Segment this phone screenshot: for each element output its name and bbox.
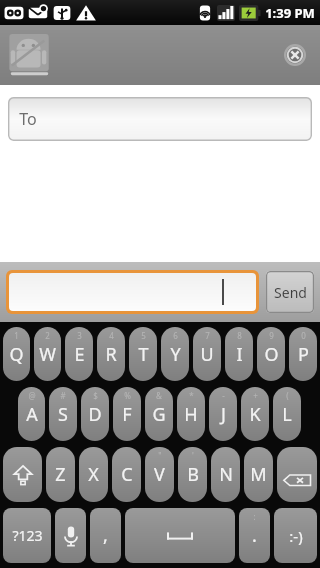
staticText: P: [298, 342, 309, 367]
staticText: +: [253, 390, 258, 401]
button[interactable]: Send: [266, 271, 314, 313]
button[interactable]: 5: [129, 327, 157, 381]
button[interactable]: X: [79, 447, 108, 502]
staticText: ,: [103, 523, 108, 548]
button[interactable]: M: [244, 447, 273, 502]
staticText: 4: [109, 330, 114, 341]
staticText: X: [88, 462, 99, 487]
staticText: B: [187, 462, 199, 487]
staticText: 7: [205, 330, 210, 341]
button[interactable]: Shift: [3, 447, 42, 502]
staticText: %: [124, 390, 131, 401]
staticText: A: [26, 402, 38, 427]
staticText: O: [264, 342, 279, 367]
staticText: V: [154, 462, 165, 487]
button[interactable]: App icon: [6, 31, 54, 79]
staticText: 1:39 PM: [265, 4, 315, 22]
staticText: C: [121, 462, 133, 487]
button[interactable]: -: [209, 387, 237, 441]
staticText: ": [158, 450, 162, 461]
staticText: 5: [141, 330, 146, 341]
button[interactable]: 8: [225, 327, 253, 381]
staticText: E: [74, 342, 85, 367]
button[interactable]: Emoticon: [274, 508, 317, 563]
button[interactable]: 3: [65, 327, 93, 381]
staticText: $: [93, 390, 98, 401]
button[interactable]: 9: [257, 327, 285, 381]
staticText: ': [192, 450, 194, 461]
staticText: 6: [173, 330, 178, 341]
button[interactable]: &: [145, 387, 173, 441]
button[interactable]: 2: [34, 327, 61, 381]
button[interactable]: ": [145, 447, 174, 502]
staticText: #: [60, 390, 66, 401]
staticText: T: [138, 342, 149, 367]
staticText: 3: [77, 330, 82, 341]
button[interactable]: (: [273, 387, 301, 441]
staticText: N: [219, 462, 233, 487]
button[interactable]: *: [177, 387, 205, 441]
button[interactable]: #: [49, 387, 77, 441]
button[interactable]: Z: [46, 447, 75, 502]
button[interactable]: Delete: [277, 447, 317, 502]
staticText: S: [58, 402, 68, 427]
staticText: M: [250, 462, 267, 487]
button[interactable]: Space: [125, 508, 235, 563]
staticText: K: [249, 402, 261, 427]
button[interactable]: 6: [161, 327, 189, 381]
staticText: I: [236, 342, 243, 367]
staticText: J: [221, 402, 226, 427]
staticText: H: [184, 402, 198, 427]
staticText: -: [222, 390, 225, 401]
button[interactable]: [9, 273, 256, 311]
button[interactable]: Close: [278, 38, 312, 72]
staticText: U: [200, 342, 214, 367]
staticText: :-): [289, 526, 303, 546]
staticText: Y: [170, 342, 181, 367]
staticText: Send: [274, 283, 307, 302]
button[interactable]: 7: [193, 327, 221, 381]
staticText: W: [39, 342, 56, 367]
staticText: 0: [301, 330, 306, 341]
staticText: :: [253, 511, 256, 522]
button[interactable]: $: [81, 387, 109, 441]
button[interactable]: Voice input: [55, 508, 86, 563]
staticText: R: [105, 342, 117, 367]
staticText: F: [122, 402, 132, 427]
button[interactable]: ,: [90, 508, 121, 563]
staticText: G: [152, 402, 166, 427]
staticText: .: [252, 523, 257, 548]
button[interactable]: @: [18, 387, 45, 441]
staticText: ?123: [12, 526, 43, 545]
button[interactable]: N: [211, 447, 240, 502]
button[interactable]: ?123: [3, 508, 51, 563]
button[interactable]: ': [178, 447, 207, 502]
staticText: L: [282, 402, 292, 427]
button[interactable]: To: [8, 97, 312, 141]
button[interactable]: 4: [97, 327, 125, 381]
staticText: To: [19, 108, 37, 130]
button[interactable]: C: [112, 447, 141, 502]
staticText: *: [189, 390, 194, 401]
staticText: Q: [9, 342, 24, 367]
staticText: 8: [237, 330, 242, 341]
staticText: &: [156, 390, 162, 401]
staticText: 9: [269, 330, 274, 341]
button[interactable]: %: [113, 387, 141, 441]
staticText: Z: [55, 462, 66, 487]
staticText: @: [28, 390, 36, 401]
staticText: D: [88, 402, 102, 427]
staticText: 2: [45, 330, 50, 341]
staticText: 1: [14, 330, 19, 341]
button[interactable]: :: [239, 508, 270, 563]
button[interactable]: 0: [289, 327, 317, 381]
button[interactable]: +: [241, 387, 269, 441]
staticText: (: [286, 390, 289, 401]
button[interactable]: 1: [3, 327, 30, 381]
